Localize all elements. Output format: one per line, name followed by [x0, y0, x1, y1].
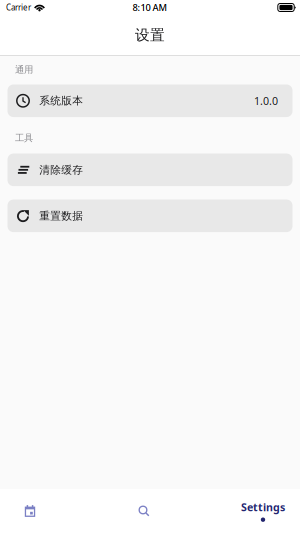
staticText: 8:10 AM: [132, 1, 167, 14]
staticText: Settings: [241, 500, 285, 514]
button[interactable]: Settings: [226, 489, 300, 533]
button[interactable]: Calendar: [0, 489, 60, 533]
staticText: 工具: [15, 132, 33, 144]
staticText: 系统版本: [39, 94, 83, 107]
staticText: 通用: [15, 64, 33, 75]
button[interactable]: 系统版本: [7, 84, 292, 117]
staticText: 设置: [135, 26, 165, 44]
button[interactable]: 清除缓存: [7, 153, 292, 186]
staticText: 清除缓存: [39, 163, 83, 176]
staticText: Carrier: [6, 2, 31, 13]
staticText: 重置数据: [39, 209, 83, 222]
button[interactable]: 重置数据: [7, 199, 292, 232]
staticText: 1.0.0: [254, 94, 278, 108]
button[interactable]: Search: [114, 489, 174, 533]
